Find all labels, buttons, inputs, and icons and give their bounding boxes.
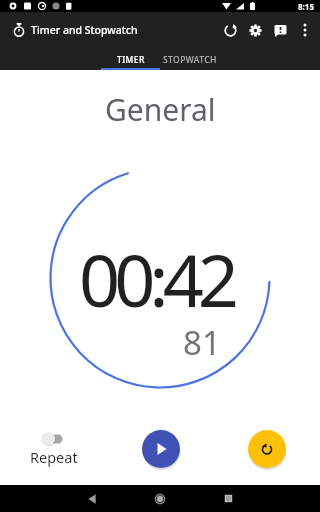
staticText: 81 bbox=[183, 320, 221, 365]
button[interactable]: TIMER bbox=[101, 49, 160, 70]
staticText: 8:15 bbox=[298, 1, 314, 12]
button[interactable]: STOPWATCH bbox=[160, 49, 219, 70]
staticText: STOPWATCH bbox=[163, 54, 217, 66]
button[interactable] bbox=[295, 20, 315, 40]
staticText: Repeat bbox=[30, 447, 78, 467]
button[interactable] bbox=[269, 19, 291, 41]
button[interactable] bbox=[244, 19, 266, 41]
staticText: 00:42 bbox=[79, 230, 234, 328]
button[interactable] bbox=[210, 485, 246, 512]
staticText: General bbox=[105, 89, 216, 130]
button[interactable]: Repeat bbox=[30, 425, 78, 467]
button[interactable] bbox=[248, 430, 286, 468]
button[interactable] bbox=[142, 430, 180, 468]
button[interactable] bbox=[74, 485, 110, 512]
staticText: Timer and Stopwatch bbox=[31, 23, 138, 37]
staticText: TIMER bbox=[117, 54, 145, 66]
button[interactable] bbox=[142, 485, 178, 512]
button[interactable] bbox=[219, 19, 241, 41]
